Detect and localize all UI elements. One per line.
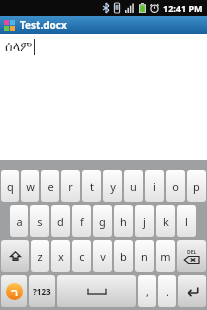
- staticText: Test.docx: [20, 18, 67, 32]
- staticText: f: [80, 214, 84, 229]
- button[interactable]: Document icon: [0, 16, 207, 34]
- staticText: ?123: [33, 286, 51, 297]
- button[interactable]: s: [30, 205, 49, 237]
- other: Document icon: [4, 20, 15, 31]
- button[interactable]: y: [103, 170, 122, 202]
- button[interactable]: u: [124, 170, 143, 202]
- staticText: ግ: [11, 286, 18, 298]
- staticText: b: [120, 249, 127, 264]
- button[interactable]: o: [166, 170, 185, 202]
- staticText: z: [37, 249, 43, 264]
- button[interactable]: b: [114, 240, 133, 272]
- button[interactable]: x: [51, 240, 70, 272]
- button[interactable]: l: [177, 205, 196, 237]
- staticText: ሰላም: [5, 41, 33, 54]
- button[interactable]: j: [135, 205, 154, 237]
- button[interactable]: r: [61, 170, 80, 202]
- staticText: u: [130, 179, 137, 194]
- staticText: v: [100, 249, 106, 264]
- staticText: m: [160, 249, 171, 264]
- button[interactable]: c: [72, 240, 91, 272]
- button[interactable]: t: [82, 170, 101, 202]
- staticText: n: [141, 249, 148, 264]
- staticText: DEL: [187, 249, 197, 256]
- button[interactable]: a: [10, 205, 28, 237]
- button[interactable]: w: [21, 170, 39, 202]
- button[interactable]: v: [93, 240, 112, 272]
- staticText: c: [79, 249, 85, 264]
- staticText: i: [153, 179, 156, 194]
- staticText: k: [163, 214, 169, 229]
- button[interactable]: q: [1, 170, 19, 202]
- staticText: p: [193, 179, 200, 194]
- button[interactable]: Space: [57, 275, 136, 307]
- staticText: j: [143, 214, 146, 229]
- staticText: s: [37, 214, 43, 229]
- staticText: o: [172, 179, 179, 194]
- button[interactable]: Shift: [1, 240, 29, 272]
- button[interactable]: p: [187, 170, 206, 202]
- button[interactable]: Enter: [178, 275, 206, 307]
- button[interactable]: d: [51, 205, 70, 237]
- staticText: y: [110, 179, 116, 194]
- button[interactable]: Delete: [177, 240, 206, 272]
- staticText: w: [26, 179, 35, 194]
- staticText: r: [68, 179, 73, 194]
- staticText: g: [99, 214, 106, 229]
- staticText: q: [7, 179, 14, 194]
- staticText: 12:41 PM: [163, 2, 203, 14]
- staticText: ,: [146, 284, 149, 299]
- button[interactable]: z: [31, 240, 49, 272]
- button[interactable]: e: [41, 170, 59, 202]
- button[interactable]: h: [114, 205, 133, 237]
- button[interactable]: n: [135, 240, 154, 272]
- button[interactable]: ,: [138, 275, 156, 307]
- staticText: h: [120, 214, 127, 229]
- staticText: x: [58, 249, 64, 264]
- staticText: l: [185, 214, 188, 229]
- button[interactable]: i: [145, 170, 164, 202]
- staticText: e: [47, 179, 54, 194]
- button[interactable]: g: [93, 205, 112, 237]
- staticText: a: [16, 214, 23, 229]
- staticText: t: [90, 179, 94, 194]
- button[interactable]: f: [72, 205, 91, 237]
- staticText: .: [166, 284, 169, 299]
- button[interactable]: .: [158, 275, 176, 307]
- staticText: d: [57, 214, 64, 229]
- button[interactable]: ?123: [29, 275, 55, 307]
- button[interactable]: Language: [1, 275, 27, 307]
- button[interactable]: m: [156, 240, 175, 272]
- button[interactable]: k: [156, 205, 175, 237]
